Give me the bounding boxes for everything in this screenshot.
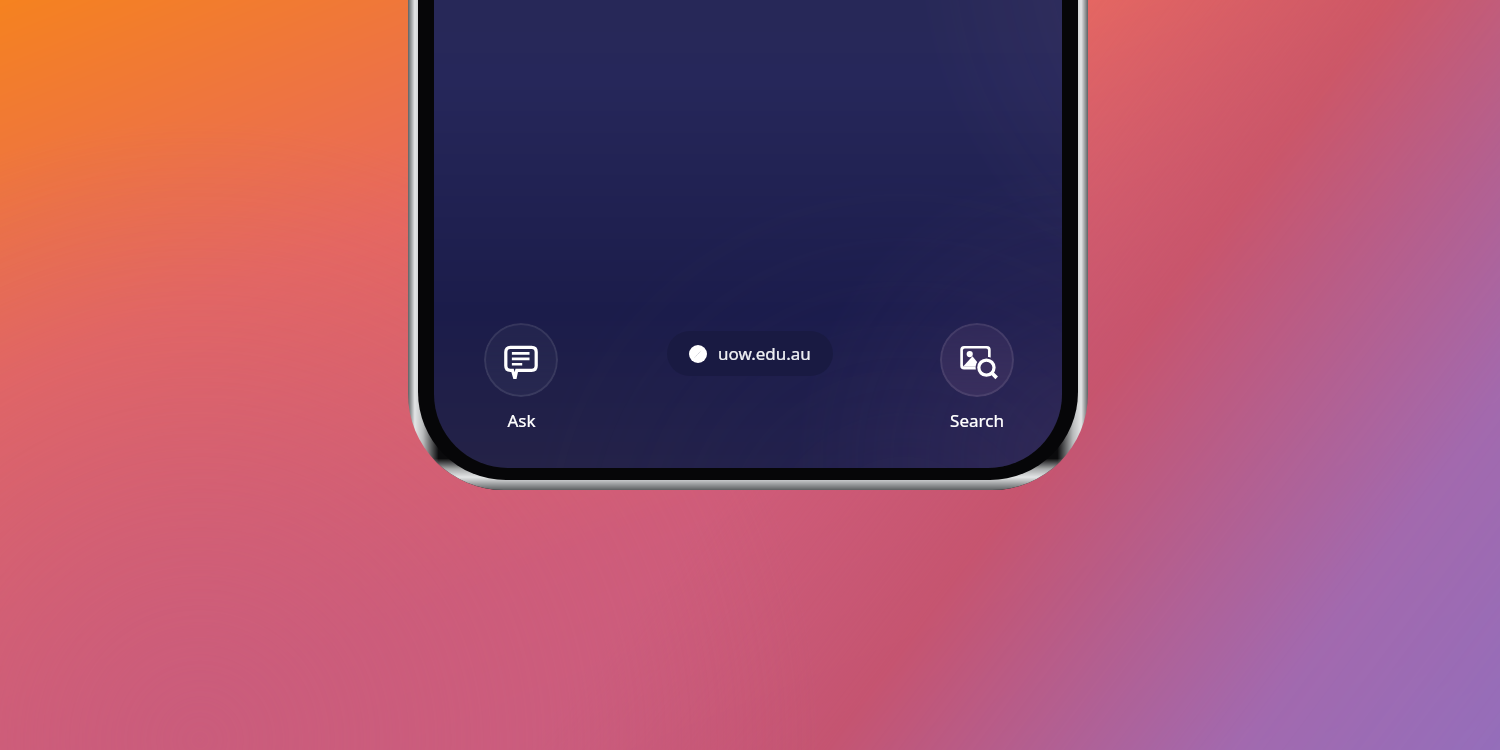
- button[interactable]: uow.edu.au: [667, 331, 833, 376]
- staticText: Search: [950, 409, 1004, 432]
- other: Search: [958, 341, 996, 379]
- staticText: Ask: [507, 409, 536, 432]
- other: Ask: [502, 341, 540, 379]
- staticText: uow.edu.au: [718, 342, 811, 365]
- button[interactable]: Search: [936, 323, 1018, 432]
- button[interactable]: Ask: [480, 323, 562, 432]
